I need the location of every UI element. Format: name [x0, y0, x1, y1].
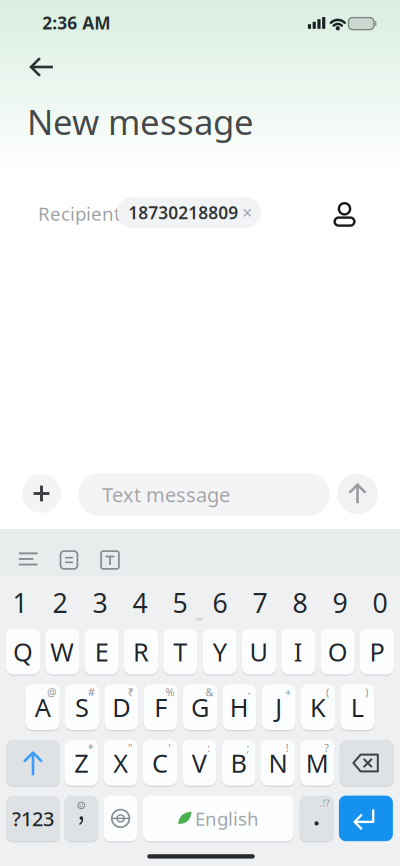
staticText: ) — [365, 685, 368, 699]
staticText: ; — [246, 741, 249, 755]
button[interactable]: S — [65, 684, 99, 730]
staticText: E — [95, 635, 109, 668]
button[interactable]: I — [281, 629, 315, 674]
staticText: @ — [47, 685, 57, 699]
staticText: × — [242, 201, 252, 224]
staticText: - — [247, 685, 250, 699]
button[interactable]: A — [26, 684, 60, 730]
button[interactable]: 1 — [1, 581, 39, 625]
staticText: M — [306, 746, 329, 780]
staticText: R — [133, 635, 149, 668]
staticText: J — [275, 690, 282, 724]
button[interactable]: V — [182, 740, 216, 786]
button[interactable]: Z — [64, 740, 98, 786]
button[interactable]: E — [85, 629, 119, 674]
button[interactable]: 0 — [361, 581, 399, 625]
button[interactable] — [6, 740, 60, 786]
staticText: Text message — [102, 481, 230, 508]
staticText: K — [310, 690, 326, 724]
button[interactable]: 5 — [161, 581, 199, 625]
button[interactable]: P — [360, 629, 394, 674]
staticText: D — [112, 690, 130, 724]
button[interactable] — [322, 192, 366, 236]
button[interactable]: F — [144, 684, 178, 730]
button[interactable]: 18730218809 — [117, 197, 261, 228]
button[interactable]: U — [242, 629, 276, 674]
button[interactable]: O — [321, 629, 355, 674]
staticText: W — [50, 635, 74, 668]
staticText: Q — [13, 635, 33, 668]
button[interactable]: C — [143, 740, 177, 786]
staticText: V — [192, 746, 207, 780]
staticText: H — [230, 690, 249, 724]
button[interactable] — [339, 796, 393, 841]
staticText: T — [173, 635, 187, 668]
staticText: ! — [286, 741, 289, 755]
button[interactable] — [337, 474, 378, 514]
button[interactable]: 3 — [81, 581, 119, 625]
button[interactable]: 7 — [241, 581, 279, 625]
button[interactable] — [22, 474, 61, 513]
button[interactable]: .!? — [300, 796, 334, 841]
staticText: F — [154, 690, 167, 724]
staticText: 0 — [372, 585, 387, 620]
staticText: 5 — [172, 585, 187, 620]
button[interactable] — [104, 796, 138, 841]
staticText: 8 — [292, 585, 307, 620]
button[interactable]: W — [45, 629, 79, 674]
button[interactable] — [64, 796, 98, 841]
button[interactable]: B — [222, 740, 256, 786]
staticText: I — [294, 635, 303, 668]
button[interactable]: N — [261, 740, 295, 786]
staticText: 6 — [212, 585, 227, 620]
staticText: ₹ — [128, 685, 134, 699]
staticText: 1 — [12, 585, 27, 620]
staticText: # — [88, 685, 95, 699]
staticText: L — [351, 690, 364, 724]
staticText: C — [152, 746, 168, 780]
button[interactable]: 8 — [281, 581, 319, 625]
button[interactable]: T — [163, 629, 197, 674]
staticText: ? — [324, 741, 329, 755]
button[interactable]: Y — [203, 629, 237, 674]
button[interactable]: L — [340, 684, 374, 730]
staticText: 2 — [52, 585, 67, 620]
staticText: & — [205, 685, 213, 699]
button[interactable] — [11, 543, 45, 575]
button[interactable] — [52, 544, 86, 576]
button[interactable]: 4 — [121, 581, 159, 625]
button[interactable]: 2 — [41, 581, 79, 625]
button[interactable]: K — [301, 684, 335, 730]
staticText: 18730218809 — [128, 201, 238, 224]
button[interactable]: R — [124, 629, 158, 674]
button[interactable]: ?123 — [6, 796, 60, 841]
button[interactable]: Text message — [78, 473, 330, 516]
button[interactable]: English — [143, 796, 294, 841]
staticText: * — [88, 741, 94, 755]
button[interactable]: M — [300, 740, 334, 786]
button[interactable]: G — [183, 684, 217, 730]
staticText: 7 — [252, 585, 267, 620]
button[interactable]: 9 — [321, 581, 359, 625]
button[interactable]: H — [222, 684, 256, 730]
button[interactable] — [93, 544, 127, 576]
staticText: : — [207, 741, 210, 755]
button[interactable] — [340, 740, 394, 786]
staticText: X — [113, 746, 128, 780]
staticText: 3 — [92, 585, 107, 620]
button[interactable]: Q — [6, 629, 40, 674]
button[interactable]: 6 — [201, 581, 239, 625]
staticText: New message — [27, 98, 254, 144]
staticText: S — [75, 690, 89, 724]
staticText: Z — [74, 746, 88, 780]
staticText: N — [268, 746, 287, 780]
staticText: .!? — [319, 797, 329, 809]
staticText: 2:36 AM — [42, 11, 110, 34]
button[interactable] — [23, 49, 59, 85]
staticText: O — [328, 635, 348, 668]
button[interactable]: J — [262, 684, 296, 730]
staticText: ( — [326, 685, 329, 699]
button[interactable]: D — [104, 684, 138, 730]
button[interactable]: X — [104, 740, 138, 786]
staticText: U — [249, 635, 268, 668]
